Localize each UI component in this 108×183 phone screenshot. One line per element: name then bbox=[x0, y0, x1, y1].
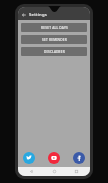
button[interactable]: Facebook bbox=[73, 152, 85, 164]
staticText: SET REMINDER bbox=[42, 38, 67, 42]
button[interactable]: Recent apps bbox=[73, 168, 80, 175]
button[interactable]: RESET ALL DAYS bbox=[21, 23, 87, 32]
staticText: RESET ALL DAYS bbox=[41, 26, 68, 30]
button[interactable]: Twitter bbox=[23, 152, 35, 164]
button[interactable]: YouTube bbox=[48, 152, 60, 164]
button[interactable]: DISCLAIMER bbox=[21, 47, 87, 56]
button[interactable]: Back bbox=[21, 12, 27, 18]
staticText: DISCLAIMER bbox=[44, 50, 65, 54]
staticText: Settings bbox=[29, 12, 47, 18]
button[interactable]: Home bbox=[51, 168, 58, 175]
button[interactable]: Back bbox=[28, 168, 35, 175]
button[interactable]: SET REMINDER bbox=[21, 35, 87, 44]
